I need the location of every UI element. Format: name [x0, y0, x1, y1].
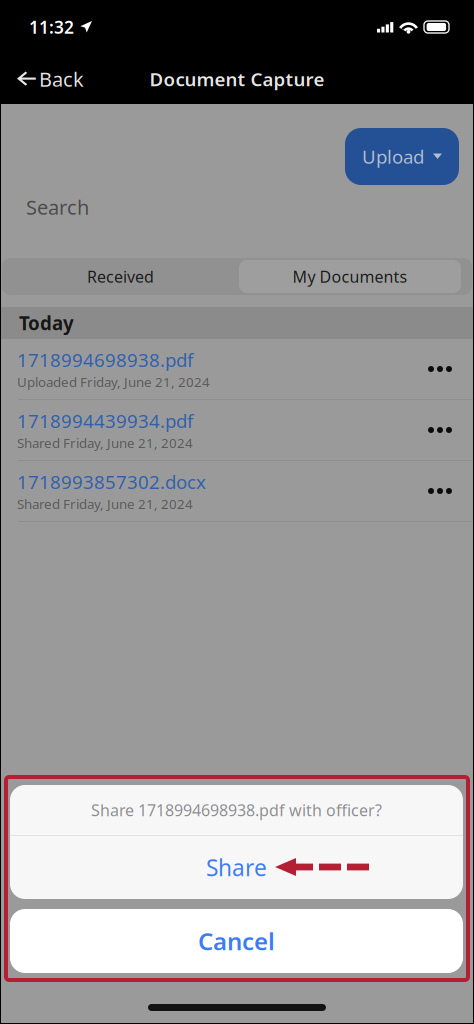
staticText: 1718993857302.docx [17, 469, 206, 494]
staticText: Upload [362, 144, 424, 169]
staticText: Back [39, 66, 84, 92]
staticText: Received [87, 266, 154, 287]
staticText: 1718994698938.pdf [17, 347, 193, 372]
staticText: Search [26, 194, 89, 220]
button[interactable]: 1718994439934.pdf [0, 400, 474, 460]
staticText: 1718994439934.pdf [17, 408, 193, 433]
staticText: Today [19, 311, 74, 335]
button[interactable]: My Documents [239, 260, 461, 293]
button[interactable]: 1718994698938.pdf [0, 339, 474, 399]
staticText: Share 1718994698938.pdf with officer? [91, 799, 382, 821]
staticText: Shared Friday, June 21, 2024 [17, 495, 193, 513]
staticText: Document Capture [149, 67, 324, 91]
staticText: Uploaded Friday, June 21, 2024 [17, 373, 210, 391]
staticText: My Documents [292, 266, 407, 287]
staticText: Share [206, 852, 267, 882]
button[interactable]: Upload [345, 128, 459, 185]
button[interactable]: 1718993857302.docx [0, 461, 474, 521]
staticText: Shared Friday, June 21, 2024 [17, 434, 193, 452]
staticText: 11:32 [29, 15, 74, 38]
button[interactable]: Received [2, 258, 239, 295]
staticText: Cancel [198, 925, 275, 957]
button[interactable]: Back [0, 57, 96, 101]
button[interactable]: Share [10, 836, 463, 899]
button[interactable]: Cancel [10, 909, 463, 973]
